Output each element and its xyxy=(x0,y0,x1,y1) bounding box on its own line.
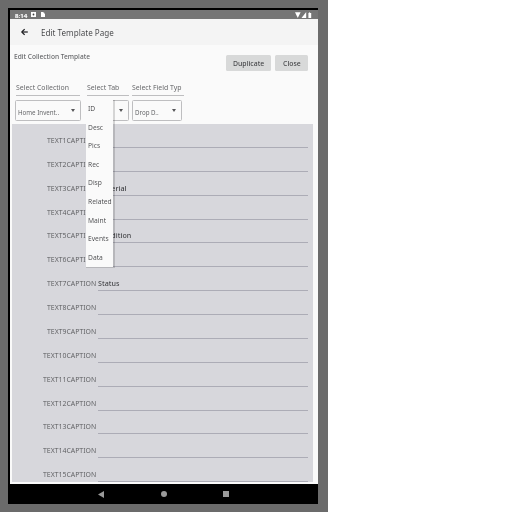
button[interactable]: Home xyxy=(154,484,174,504)
staticText: TEXT11CAPTION xyxy=(43,375,97,384)
staticText: Desc xyxy=(88,123,104,132)
staticText: Status xyxy=(98,278,120,288)
staticText: Pics xyxy=(88,141,101,150)
staticText: TEXT13CAPTION xyxy=(43,422,97,431)
staticText: TEXT5CAPTION xyxy=(47,231,97,240)
button[interactable]: TEXT11CAPTION xyxy=(12,363,313,387)
staticText: Material xyxy=(98,183,127,193)
button[interactable]: TEXT3CAPTION xyxy=(12,172,313,196)
button[interactable]: TEXT7CAPTION xyxy=(12,267,313,291)
button[interactable]: Recents xyxy=(216,484,236,504)
button[interactable]: TEXT5CAPTION xyxy=(12,219,313,243)
button[interactable]: ID xyxy=(86,100,129,121)
button[interactable]: Related xyxy=(86,192,113,211)
staticText: TEXT1CAPTION xyxy=(47,136,97,145)
button[interactable]: TEXT12CAPTION xyxy=(12,387,313,411)
staticText: Select Field Typ xyxy=(132,83,182,92)
staticText: 8:14 xyxy=(15,11,28,19)
button[interactable]: ID xyxy=(86,99,113,118)
button[interactable]: Disp xyxy=(86,173,113,192)
staticText: TEXT2CAPTION xyxy=(47,160,97,169)
button[interactable]: Rec xyxy=(86,155,113,174)
staticText: TEXT14CAPTION xyxy=(43,446,97,455)
button[interactable]: Drop D.. xyxy=(132,100,182,121)
staticText: Edit Template Page xyxy=(41,27,114,38)
staticText: Select Tab xyxy=(87,83,120,92)
staticText: Data xyxy=(88,253,103,262)
button[interactable]: Desc xyxy=(86,118,113,137)
button[interactable]: Pics xyxy=(86,136,113,155)
button[interactable]: TEXT10CAPTION xyxy=(12,339,313,363)
staticText: Select Collection xyxy=(16,83,69,92)
button[interactable]: TEXT2CAPTION xyxy=(12,148,313,172)
staticText: Maint xyxy=(88,216,107,225)
button[interactable]: TEXT4CAPTION xyxy=(12,196,313,220)
staticText: TEXT6CAPTION xyxy=(47,255,97,264)
button[interactable]: Back xyxy=(12,19,36,45)
staticText: TEXT15CAPTION xyxy=(43,470,97,479)
staticText: TEXT4CAPTION xyxy=(47,208,97,217)
button[interactable]: Home Invent.. xyxy=(15,100,81,121)
staticText: Duplicate xyxy=(233,59,265,68)
staticText: Events xyxy=(88,234,109,243)
button[interactable]: TEXT6CAPTION xyxy=(12,243,313,267)
staticText: Drop D.. xyxy=(135,108,159,116)
staticText: ID xyxy=(88,104,96,113)
staticText: ID xyxy=(89,108,96,116)
staticText: Related xyxy=(88,197,112,206)
button[interactable]: TEXT15CAPTION xyxy=(12,458,313,482)
staticText: Edit Collection Template xyxy=(14,52,90,61)
staticText: TEXT12CAPTION xyxy=(43,399,97,408)
staticText: Condition xyxy=(98,230,132,240)
staticText: TEXT10CAPTION xyxy=(43,351,97,360)
staticText: TEXT8CAPTION xyxy=(47,303,97,312)
staticText: TEXT7CAPTION xyxy=(47,279,97,288)
button[interactable]: Maint xyxy=(86,211,113,230)
button[interactable]: Close xyxy=(275,55,308,71)
button[interactable]: Events xyxy=(86,229,113,248)
button[interactable]: Duplicate xyxy=(226,55,271,71)
button[interactable]: TEXT1CAPTION xyxy=(12,124,313,148)
button[interactable]: TEXT9CAPTION xyxy=(12,315,313,339)
staticText: Home Invent.. xyxy=(18,108,60,116)
button[interactable]: TEXT14CAPTION xyxy=(12,434,313,458)
staticText: TEXT3CAPTION xyxy=(47,184,97,193)
button[interactable]: TEXT13CAPTION xyxy=(12,410,313,434)
button[interactable]: Back xyxy=(91,484,111,504)
staticText: Rec xyxy=(88,160,100,169)
button[interactable]: Data xyxy=(86,248,113,267)
button[interactable]: TEXT8CAPTION xyxy=(12,291,313,315)
staticText: TEXT9CAPTION xyxy=(47,327,97,336)
staticText: Disp xyxy=(88,178,102,187)
staticText: Close xyxy=(283,59,301,68)
